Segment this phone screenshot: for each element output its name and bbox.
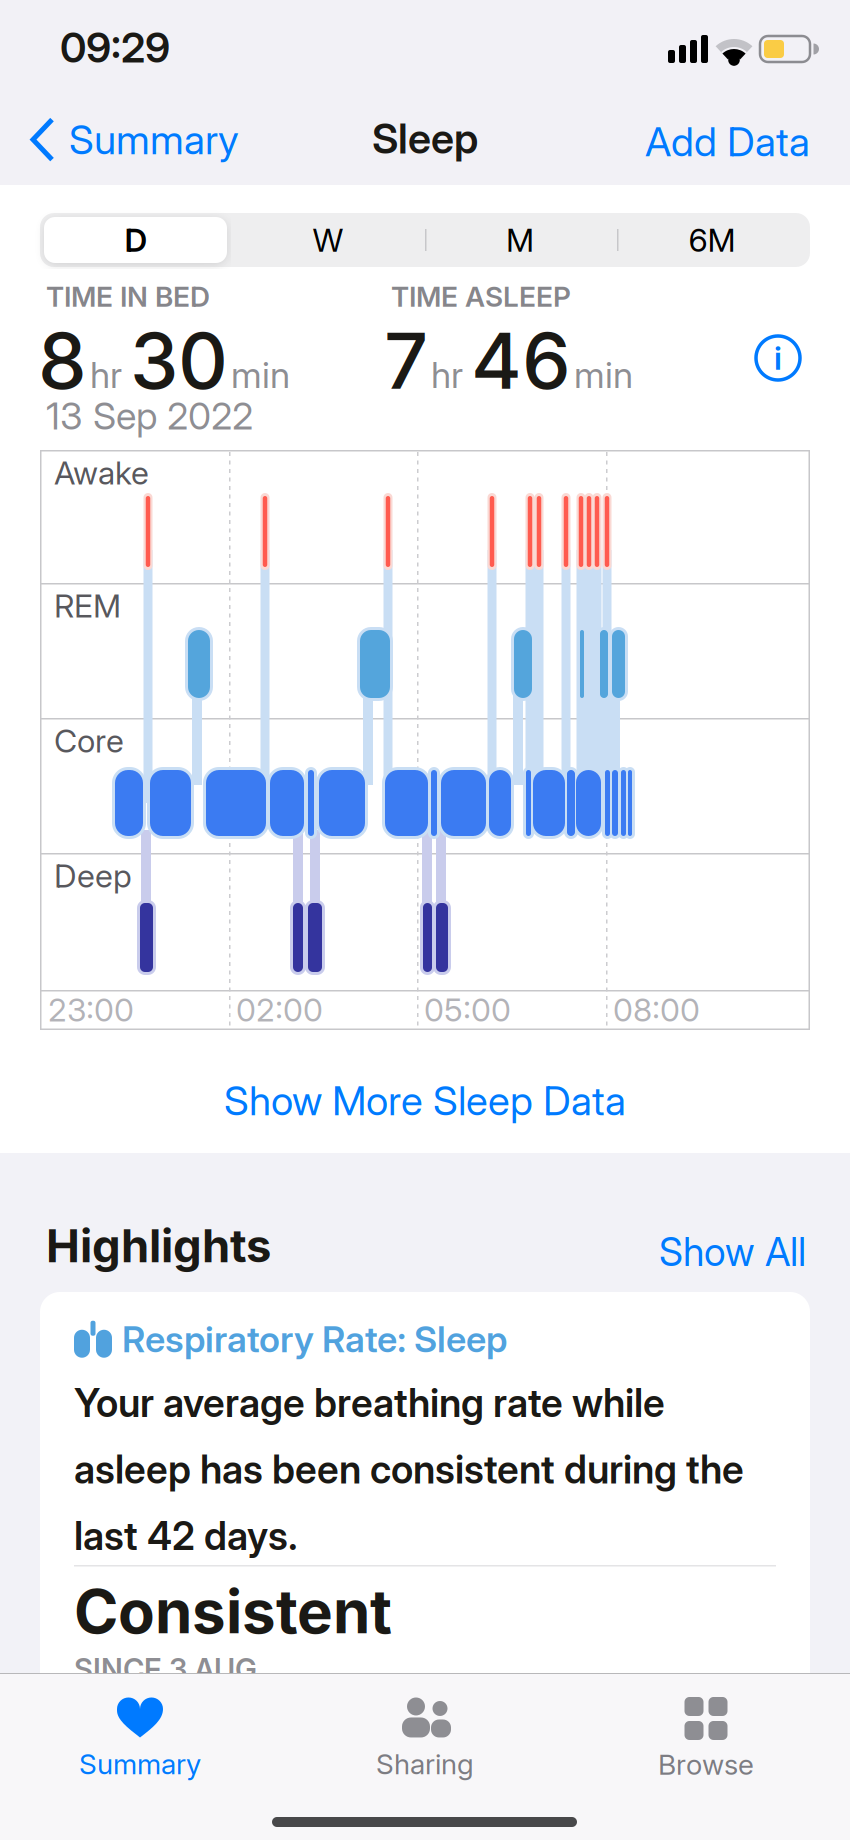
staticText: Your average breathing rate while [74,1380,665,1426]
button[interactable]: Show All [659,1229,806,1275]
staticText: 09:29 [60,23,170,72]
button[interactable]: Summary [30,116,239,163]
staticText: Summary [79,1747,201,1780]
staticText: 02:00 [236,991,323,1029]
staticText: 8 [38,315,87,406]
staticText: Summary [69,116,239,163]
staticText: Awake [54,454,149,492]
staticText: M [506,221,534,259]
staticText: 30 [130,315,228,406]
staticText: hr [90,354,122,396]
button[interactable]: Summary [20,1689,260,1789]
button[interactable]: D [40,213,232,267]
staticText: min [574,354,633,396]
staticText: Highlights [46,1219,271,1272]
staticText: Sharing [376,1747,474,1780]
staticText: min [231,354,290,396]
button[interactable]: i [756,336,800,380]
staticText: D [124,221,147,259]
staticText: Core [54,722,124,760]
staticText: Deep [54,857,132,895]
button[interactable]: M [424,213,616,267]
staticText: Add Data [645,118,810,165]
staticText: SINCE 3 AUG [74,1652,257,1687]
button[interactable]: Show More Sleep Data [0,1077,850,1124]
staticText: 13 Sep 2022 [46,394,253,438]
staticText: i [774,339,782,377]
staticText: 46 [471,315,571,406]
button[interactable]: Sharing [305,1689,545,1789]
staticText: Show More Sleep Data [224,1077,626,1124]
staticText: asleep has been consistent during the [74,1447,744,1492]
button[interactable]: 6M [616,213,808,267]
staticText: 6M [688,221,735,259]
staticText: hr [431,354,463,396]
staticText: Show All [659,1229,806,1275]
staticText: TIME IN BED [46,280,210,313]
staticText: REM [54,587,121,625]
staticText: Respiratory Rate: Sleep [122,1318,507,1360]
button[interactable]: Add Data [645,118,810,165]
staticText: 05:00 [424,991,511,1029]
staticText: TIME ASLEEP [391,280,571,313]
staticText: W [312,221,343,259]
staticText: 23:00 [48,991,134,1029]
staticText: last 42 days. [74,1513,298,1559]
staticText: Sleep [372,114,478,163]
staticText: 08:00 [613,991,700,1029]
button[interactable]: Browse [586,1689,826,1789]
button[interactable]: W [232,213,424,267]
staticText: 7 [384,315,428,406]
button[interactable]: Respiratory Rate: Sleep [40,1292,810,1762]
staticText: Consistent [74,1576,392,1647]
staticText: Browse [658,1748,754,1781]
